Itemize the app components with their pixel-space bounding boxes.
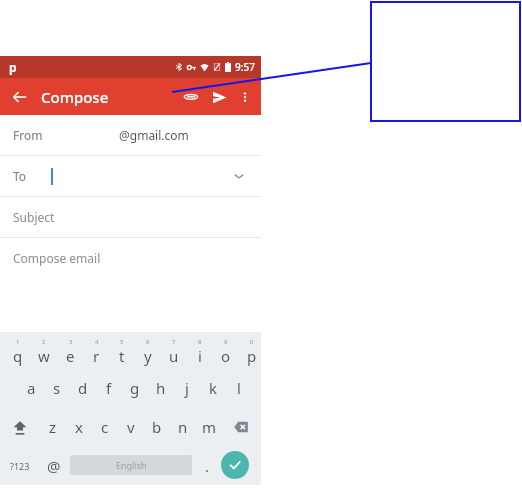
button[interactable]: Expand recipients — [229, 166, 249, 186]
staticText: w — [38, 346, 50, 366]
staticText: p — [9, 59, 17, 75]
button[interactable]: n — [170, 407, 196, 446]
staticText: g — [130, 378, 140, 398]
button[interactable]: Send — [205, 83, 233, 111]
button[interactable]: To — [0, 156, 261, 196]
staticText: n — [178, 417, 188, 437]
staticText: h — [156, 378, 166, 398]
staticText: 3 — [69, 338, 73, 346]
staticText: e — [66, 346, 75, 366]
button[interactable]: Subject — [0, 197, 261, 237]
button[interactable]: Attach file — [177, 83, 205, 111]
staticText: Compose email — [13, 250, 101, 266]
button[interactable]: From — [0, 115, 261, 155]
button[interactable]: 1 — [5, 335, 31, 368]
button[interactable]: v — [118, 407, 144, 446]
staticText: l — [237, 378, 241, 398]
button[interactable]: g — [122, 368, 148, 407]
staticText: From — [13, 127, 43, 143]
staticText: 6 — [146, 338, 150, 346]
button[interactable]: 6 — [135, 335, 161, 368]
staticText: u — [169, 346, 179, 366]
button[interactable]: 9 — [213, 335, 239, 368]
button[interactable]: f — [96, 368, 122, 407]
staticText: r — [93, 346, 100, 366]
staticText: 0 — [250, 338, 254, 346]
staticText: ?123 — [10, 460, 30, 472]
staticText: a — [27, 378, 36, 398]
button[interactable]: s — [44, 368, 70, 407]
button[interactable]: c — [92, 407, 118, 446]
button[interactable]: d — [70, 368, 96, 407]
staticText: Compose — [41, 87, 109, 107]
staticText: o — [221, 346, 231, 366]
staticText: 5 — [120, 338, 124, 346]
staticText: b — [152, 417, 162, 437]
button[interactable]: Space — [70, 455, 192, 475]
staticText: f — [106, 378, 112, 398]
button[interactable]: h — [148, 368, 174, 407]
button[interactable]: Compose email — [0, 238, 261, 332]
button[interactable]: l — [226, 368, 252, 407]
button[interactable]: Backspace — [222, 407, 256, 446]
staticText: English — [116, 459, 147, 471]
button[interactable]: ?123 — [2, 446, 38, 485]
button[interactable]: 4 — [83, 335, 109, 368]
staticText: s — [53, 378, 61, 398]
staticText: j — [185, 378, 189, 398]
staticText: k — [209, 378, 218, 398]
button[interactable]: 8 — [187, 335, 213, 368]
staticText: 7 — [172, 338, 176, 346]
staticText: t — [119, 346, 125, 366]
button[interactable]: x — [66, 407, 92, 446]
button[interactable]: . — [196, 446, 218, 485]
staticText: @gmail.com — [119, 127, 189, 143]
staticText: d — [78, 378, 88, 398]
staticText: 9:57 — [235, 60, 255, 74]
button[interactable]: More options — [233, 85, 257, 109]
staticText: p — [247, 346, 257, 366]
button[interactable]: m — [196, 407, 222, 446]
button[interactable]: 7 — [161, 335, 187, 368]
button[interactable]: j — [174, 368, 200, 407]
button[interactable]: z — [40, 407, 66, 446]
staticText: Subject — [13, 209, 55, 225]
staticText: y — [144, 346, 152, 366]
staticText: To — [13, 168, 27, 184]
button[interactable]: k — [200, 368, 226, 407]
staticText: @ — [47, 456, 61, 476]
staticText: 4 — [95, 338, 99, 346]
button[interactable]: b — [144, 407, 170, 446]
staticText: c — [101, 417, 109, 437]
button[interactable]: Back — [6, 83, 34, 111]
button[interactable]: 3 — [57, 335, 83, 368]
staticText: 8 — [198, 338, 202, 346]
staticText: i — [198, 346, 202, 366]
button[interactable]: Enter — [221, 451, 249, 479]
staticText: x — [75, 417, 83, 437]
button[interactable]: a — [18, 368, 44, 407]
staticText: m — [202, 417, 217, 437]
button[interactable]: 2 — [31, 335, 57, 368]
button[interactable]: Shift — [2, 407, 38, 446]
staticText: 9 — [224, 338, 228, 346]
button[interactable]: @ — [40, 446, 68, 485]
staticText: 1 — [16, 338, 20, 346]
staticText: . — [205, 456, 210, 476]
staticText: v — [127, 417, 135, 437]
button[interactable]: 5 — [109, 335, 135, 368]
button[interactable]: 0 — [239, 335, 265, 368]
staticText: q — [13, 346, 23, 366]
staticText: 2 — [42, 338, 46, 346]
staticText: z — [49, 417, 57, 437]
